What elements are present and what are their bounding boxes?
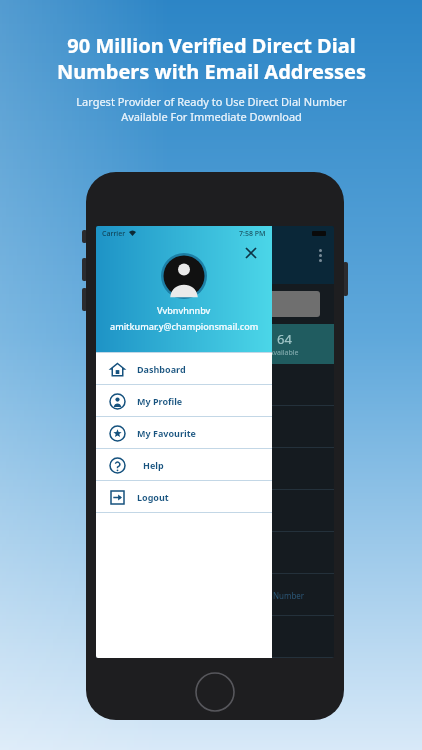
button[interactable]: More options: [319, 249, 322, 262]
button[interactable]: Company: [156, 291, 320, 317]
button[interactable]: [96, 616, 334, 658]
button[interactable]: [96, 532, 334, 574]
button[interactable]: My Favourite: [96, 417, 272, 448]
button[interactable]: My Profile: [96, 385, 272, 416]
staticText: 64: [277, 330, 292, 348]
button[interactable]: Help: [96, 449, 272, 480]
button[interactable]: [96, 448, 334, 490]
button[interactable]: [96, 406, 334, 448]
staticText: 7:58 PM: [239, 229, 266, 239]
button[interactable]: Close drawer: [242, 244, 260, 262]
staticText: Help: [143, 459, 164, 471]
staticText: Largest Provider of Ready to Use Direct …: [76, 94, 347, 124]
staticText: 90 Million Verified Direct Dial Numbers …: [57, 32, 366, 85]
button[interactable]: Dashboard: [96, 353, 272, 384]
button[interactable]: [96, 364, 334, 406]
staticText: Logout: [137, 491, 169, 503]
staticText: amitkumar.y@championsmail.com: [110, 320, 259, 332]
button[interactable]: Logout: [96, 481, 272, 512]
button[interactable]: [96, 490, 334, 532]
staticText: Carrier: [102, 229, 126, 239]
staticText: Direct Dial Number: [232, 590, 305, 601]
staticText: Company: [162, 299, 200, 310]
button[interactable]: Direct Dial Number: [96, 574, 334, 616]
staticText: Dashboard: [137, 363, 186, 375]
staticText: My Favourite: [137, 427, 196, 439]
staticText: Vvbnvhnnbv: [157, 304, 211, 316]
staticText: Available: [269, 348, 299, 358]
staticText: My Profile: [137, 395, 183, 407]
